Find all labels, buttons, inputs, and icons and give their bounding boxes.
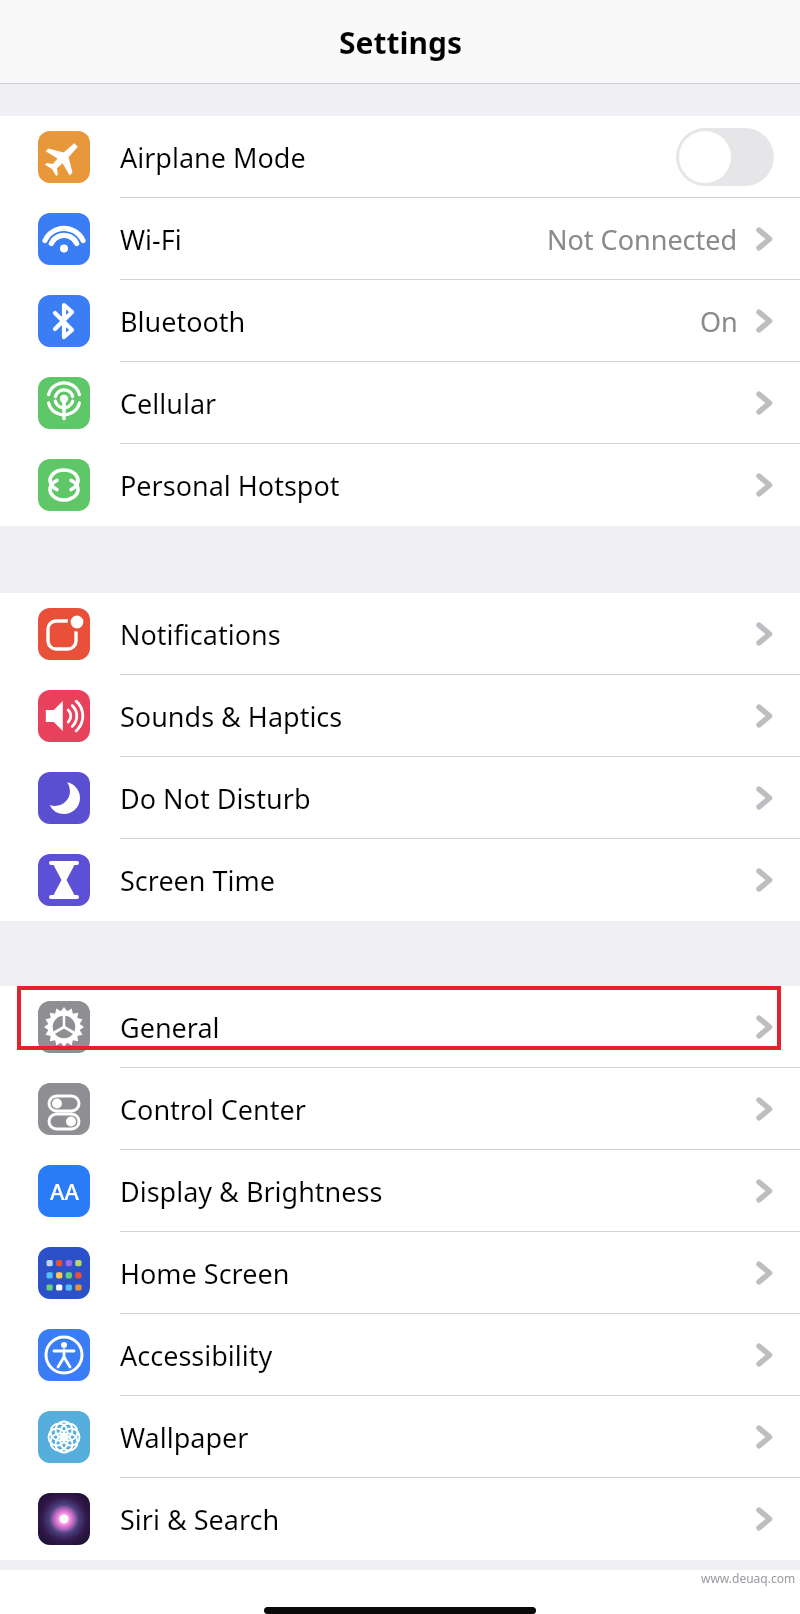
staticText: Display & Brightness: [120, 1173, 383, 1210]
staticText: Accessibility: [120, 1337, 273, 1374]
button[interactable]: Home Screen: [0, 1232, 800, 1314]
staticText: Notifications: [120, 616, 281, 653]
button[interactable]: Control Center: [0, 1068, 800, 1150]
staticText: Sounds & Haptics: [120, 698, 343, 735]
staticText: Control Center: [120, 1091, 306, 1128]
staticText: Siri & Search: [120, 1501, 280, 1538]
staticText: Cellular: [120, 385, 217, 422]
staticText: Wi-Fi: [120, 221, 182, 258]
button[interactable]: Airplane Mode: [0, 116, 800, 198]
staticText: Wallpaper: [120, 1419, 249, 1456]
button[interactable]: Screen Time: [0, 839, 800, 921]
staticText: On: [700, 303, 738, 340]
button[interactable]: Wallpaper: [0, 1396, 800, 1478]
button[interactable]: AA: [0, 1150, 800, 1232]
button[interactable]: Airplane Mode toggle, off: [676, 128, 774, 186]
staticText: Screen Time: [120, 862, 276, 899]
button[interactable]: Bluetooth: [0, 280, 800, 362]
staticText: Bluetooth: [120, 303, 246, 340]
button[interactable]: Do Not Disturb: [0, 757, 800, 839]
staticText: Personal Hotspot: [120, 467, 340, 504]
button[interactable]: Personal Hotspot: [0, 444, 800, 526]
staticText: Do Not Disturb: [120, 780, 311, 817]
staticText: Airplane Mode: [120, 139, 306, 176]
button[interactable]: Siri & Search: [0, 1478, 800, 1560]
button[interactable]: Wi-Fi: [0, 198, 800, 280]
button[interactable]: Cellular: [0, 362, 800, 444]
button[interactable]: General: [0, 986, 800, 1068]
staticText: Home Screen: [120, 1255, 290, 1292]
button[interactable]: Accessibility: [0, 1314, 800, 1396]
button[interactable]: Notifications: [0, 593, 800, 675]
staticText: General: [120, 1009, 220, 1046]
staticText: Settings: [339, 22, 462, 63]
staticText: Not Connected: [547, 221, 738, 258]
staticText: AA: [50, 1176, 79, 1206]
button[interactable]: Sounds & Haptics: [0, 675, 800, 757]
staticText: www.deuaq.com: [701, 1570, 796, 1586]
